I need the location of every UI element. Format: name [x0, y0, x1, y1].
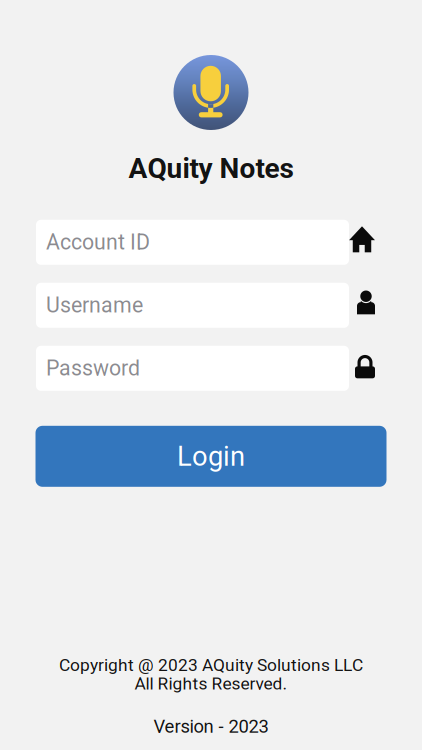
staticText: Version - 2023 [153, 716, 268, 737]
button[interactable]: Account ID [36, 220, 349, 265]
staticText: All Rights Reserved. [134, 673, 287, 694]
staticText: Password [46, 356, 140, 381]
staticText: Account ID [46, 230, 150, 255]
staticText: Copyright @ 2023 AQuity Solutions LLC [59, 655, 363, 675]
button[interactable]: Username [36, 283, 349, 328]
staticText: AQuity Notes [128, 152, 293, 185]
button[interactable]: Password [36, 346, 349, 391]
staticText: Login [177, 440, 245, 472]
button[interactable]: Login [35, 426, 386, 487]
staticText: Username [46, 293, 143, 318]
